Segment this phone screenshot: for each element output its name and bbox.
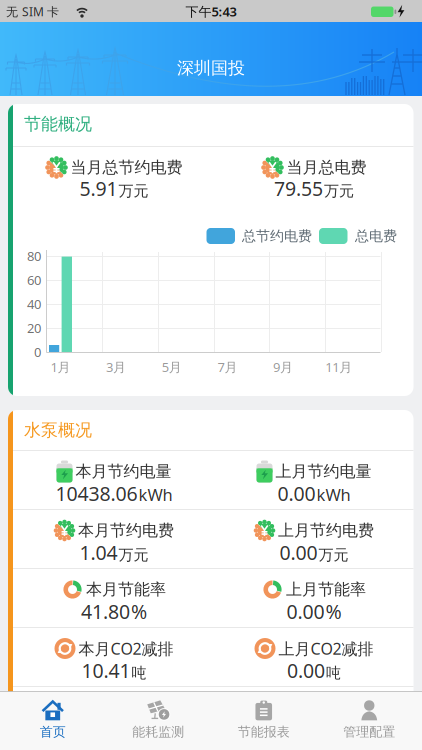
staticText: 80 xyxy=(27,247,41,265)
staticText: 首页 xyxy=(40,724,66,740)
staticText: 万元 xyxy=(118,182,148,200)
button[interactable]: 首页 xyxy=(0,692,105,748)
staticText: 0 xyxy=(34,343,41,361)
staticText: kWh xyxy=(316,483,350,506)
button[interactable]: 管理配置 xyxy=(317,692,422,748)
staticText: 万元 xyxy=(118,546,148,564)
staticText: 本月CO2减排 xyxy=(78,638,173,659)
staticText: 万元 xyxy=(324,182,354,200)
staticText: 79.55 xyxy=(274,175,323,202)
staticText: 0.00 xyxy=(287,657,325,684)
staticText: 无 SIM 卡 xyxy=(6,3,59,20)
staticText: 当月总节约电费 xyxy=(70,157,182,178)
staticText: 管理配置 xyxy=(343,724,395,740)
staticText: 60 xyxy=(27,271,41,289)
staticText: 当月总电费 xyxy=(286,157,366,178)
staticText: kWh xyxy=(138,483,172,506)
button[interactable]: 节能报表 xyxy=(211,692,316,748)
staticText: 万元 xyxy=(318,546,348,564)
staticText: 5.91 xyxy=(79,175,117,202)
staticText: 11月 xyxy=(325,358,352,376)
staticText: 41.80 xyxy=(81,598,130,625)
staticText: 0.00 xyxy=(286,598,324,625)
staticText: 1.04 xyxy=(79,539,117,566)
staticText: 0.00 xyxy=(277,480,315,507)
staticText: 本月节约电费 xyxy=(78,520,174,541)
staticText: 上月CO2减排 xyxy=(278,638,373,659)
staticText: 40 xyxy=(27,295,41,313)
staticText: 5月 xyxy=(162,358,182,376)
staticText: 7月 xyxy=(217,358,237,376)
staticText: 10438.06 xyxy=(55,480,137,507)
staticText: 节能报表 xyxy=(238,724,290,740)
staticText: 深圳国投 xyxy=(177,57,245,79)
staticText: % xyxy=(325,598,341,625)
staticText: 下午5:43 xyxy=(185,3,236,20)
staticText: 总电费 xyxy=(355,227,397,245)
staticText: 吨 xyxy=(326,664,341,682)
staticText: 上月节约电量 xyxy=(275,461,371,482)
staticText: 本月节能率 xyxy=(86,579,166,600)
staticText: 吨 xyxy=(131,664,146,682)
staticText: 0.00 xyxy=(279,539,317,566)
staticText: 20 xyxy=(27,319,41,337)
staticText: 1月 xyxy=(50,358,70,376)
staticText: 上月节约电费 xyxy=(278,520,374,541)
staticText: 节能概况 xyxy=(24,113,92,135)
staticText: 总节约电费 xyxy=(242,227,312,245)
button[interactable]: 能耗监测 xyxy=(106,692,211,748)
staticText: 水泵概况 xyxy=(24,419,92,441)
staticText: 3月 xyxy=(106,358,126,376)
staticText: 能耗监测 xyxy=(132,724,184,740)
staticText: 本月节约电量 xyxy=(75,461,171,482)
staticText: 9月 xyxy=(273,358,293,376)
staticText: 10.41 xyxy=(81,657,130,684)
staticText: 上月节能率 xyxy=(286,579,366,600)
staticText: % xyxy=(131,598,147,625)
